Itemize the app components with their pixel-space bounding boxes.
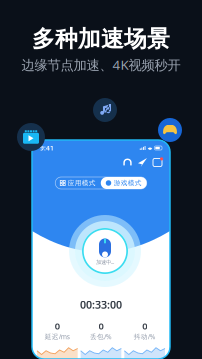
staticText: 丢包/% [90, 332, 112, 341]
staticText: 加速中... [96, 258, 114, 266]
staticText: 0 [142, 320, 147, 332]
button[interactable]: 应用模式 [55, 177, 101, 189]
staticText: 0 [55, 320, 60, 332]
staticText: 9:41 [40, 144, 54, 152]
button[interactable]: 加速中... [69, 215, 141, 287]
button[interactable]: 消息 [147, 158, 162, 166]
staticText: 0 [98, 320, 103, 332]
button[interactable]: 分享 [132, 158, 147, 167]
staticText: 边缘节点加速、4K视频秒开 [21, 56, 180, 73]
staticText: 00:33:00 [80, 298, 122, 312]
staticText: 游戏模式 [114, 179, 142, 187]
staticText: 延迟/ms [45, 332, 70, 341]
button[interactable]: 客服 [123, 158, 132, 167]
staticText: 抖动/% [134, 332, 156, 341]
staticText: 应用模式 [68, 179, 96, 187]
button[interactable]: 游戏模式 [101, 177, 147, 189]
staticText: 多种加速场景 [32, 25, 170, 53]
